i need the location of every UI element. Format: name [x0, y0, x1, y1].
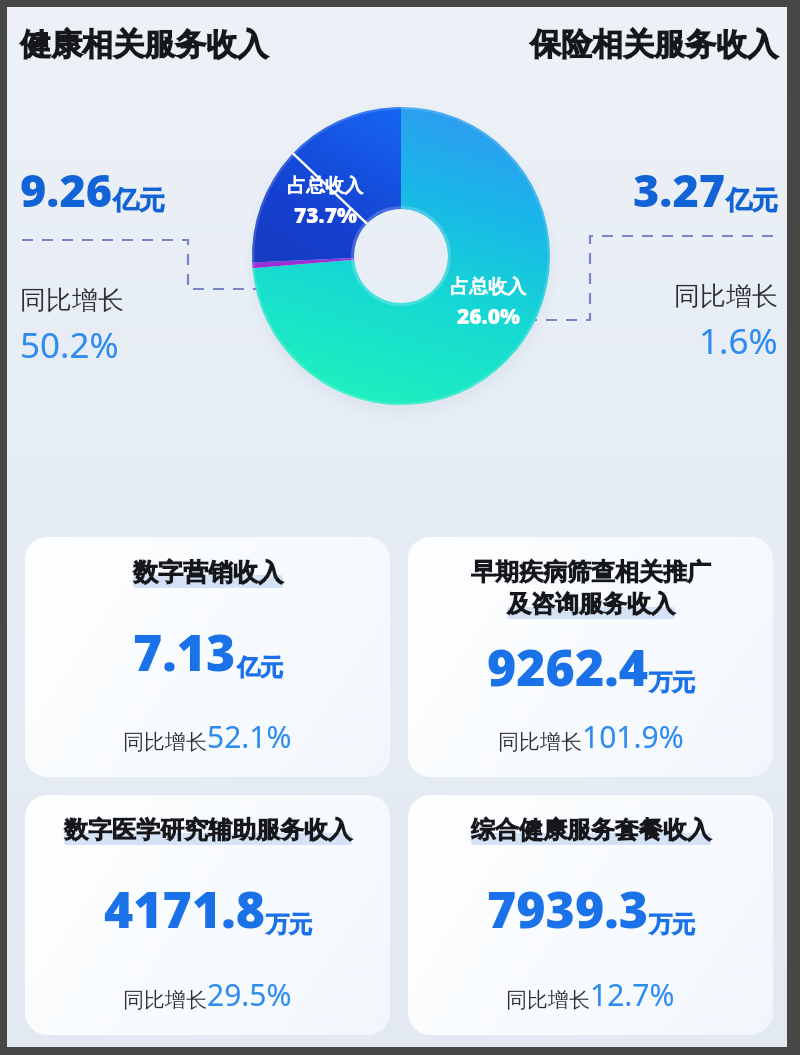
staticText: 7939.3: [487, 875, 648, 943]
staticText: 万元: [266, 910, 312, 939]
staticText: 数字营销收入: [133, 557, 283, 588]
staticText: 同比增长: [123, 729, 207, 755]
staticText: 早期疾病筛查相关推广: [471, 557, 711, 587]
staticText: 52.1%: [207, 716, 292, 757]
staticText: 4171.8: [104, 875, 265, 943]
staticText: 29.5%: [207, 974, 292, 1015]
staticText: 101.9%: [582, 716, 684, 757]
staticText: 50.2%: [20, 321, 119, 369]
staticText: 7.13: [133, 618, 236, 686]
staticText: 占总收入: [450, 275, 526, 299]
staticText: 万元: [649, 668, 695, 697]
staticText: 9.26: [20, 159, 113, 220]
staticText: 亿元: [237, 653, 283, 682]
button[interactable]: 早期疾病筛查相关推广: [408, 537, 773, 777]
staticText: 3.27: [633, 159, 726, 220]
button[interactable]: 综合健康服务套餐收入: [408, 795, 773, 1035]
button[interactable]: 数字营销收入: [25, 537, 390, 777]
staticText: 同比增长: [123, 987, 207, 1013]
staticText: 12.7%: [590, 974, 675, 1015]
staticText: 万元: [649, 910, 695, 939]
staticText: 亿元: [113, 184, 165, 217]
staticText: 亿元: [726, 184, 778, 217]
staticText: 综合健康服务套餐收入: [471, 815, 711, 845]
staticText: 同比增长: [498, 729, 582, 755]
staticText: 1.6%: [699, 317, 778, 365]
button[interactable]: 数字医学研究辅助服务收入: [25, 795, 390, 1035]
staticText: 同比增长: [506, 987, 590, 1013]
staticText: 同比增长: [20, 284, 124, 317]
staticText: 及咨询服务收入: [507, 589, 675, 619]
staticText: 保险相关服务收入: [530, 25, 778, 64]
staticText: 健康相关服务收入: [20, 25, 268, 64]
staticText: 同比增长: [674, 280, 778, 313]
staticText: 73.7%: [294, 201, 357, 230]
staticText: 数字医学研究辅助服务收入: [64, 815, 352, 845]
staticText: 9262.4: [487, 633, 648, 701]
staticText: 占总收入: [287, 174, 363, 198]
staticText: 26.0%: [457, 302, 520, 331]
